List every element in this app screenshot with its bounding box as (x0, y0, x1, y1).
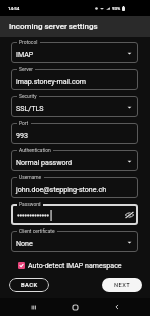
button[interactable]: Home (67, 299, 83, 315)
staticText: 93% (112, 6, 121, 11)
button[interactable]: Protocol (11, 42, 138, 63)
button[interactable]: Authentication (11, 150, 138, 171)
staticText: Protocol (19, 39, 38, 45)
button[interactable]: Recent apps (25, 299, 41, 315)
staticText: Server (19, 66, 33, 72)
staticText: SSL/TLS (16, 104, 44, 112)
staticText: IMAP (16, 50, 34, 58)
button[interactable]: BACK (9, 278, 49, 292)
button[interactable]: Password (11, 204, 138, 225)
staticText: 993 (16, 131, 28, 139)
staticText: Auto-detect IMAP namespace (28, 261, 122, 269)
staticText: Password (19, 201, 41, 207)
button[interactable]: Auto-detect IMAP namespace (18, 261, 122, 269)
button[interactable]: Client certificate (11, 231, 138, 252)
staticText: imap.stoney-mail.com (16, 77, 86, 85)
staticText: BACK (21, 282, 38, 289)
button[interactable]: Server (11, 69, 138, 90)
staticText: NEXT (114, 282, 131, 289)
staticText: None (16, 239, 33, 247)
staticText: john.doe@stepping-stone.ch (16, 185, 107, 193)
button[interactable]: Back (109, 299, 125, 315)
button[interactable]: Port (11, 123, 138, 144)
staticText: Port (19, 120, 29, 126)
staticText: Authentication (19, 147, 51, 153)
staticText: Normal password (16, 158, 72, 166)
staticText: Incoming server settings (9, 22, 98, 31)
staticText: Username (19, 174, 42, 180)
button[interactable]: Username (11, 177, 138, 198)
staticText: Security (19, 93, 37, 99)
staticText: Client certificate (19, 228, 55, 234)
button[interactable]: Security (11, 96, 138, 117)
button[interactable]: NEXT (102, 278, 142, 292)
staticText: 14:54 (8, 6, 20, 11)
